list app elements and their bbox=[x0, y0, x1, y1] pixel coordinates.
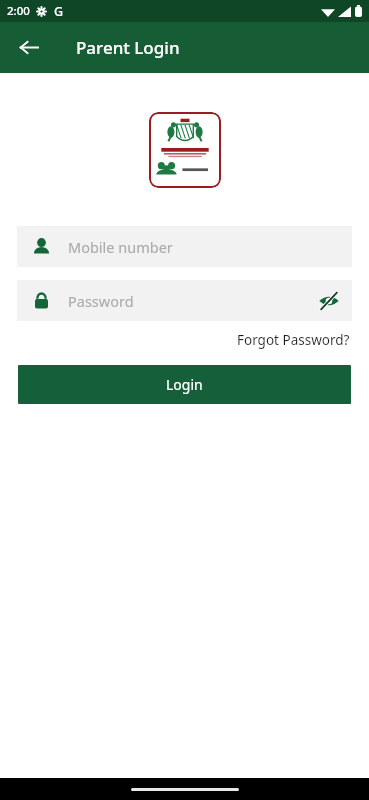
button[interactable]: Login bbox=[18, 365, 351, 404]
button[interactable]: Back bbox=[12, 31, 45, 64]
staticText: Login bbox=[166, 375, 203, 394]
staticText: Forgot Password? bbox=[237, 331, 350, 349]
staticText: Password bbox=[68, 291, 134, 311]
button[interactable]: Toggle password visibility bbox=[310, 282, 348, 320]
button[interactable]: Password bbox=[17, 280, 352, 321]
staticText: Parent Login bbox=[76, 36, 180, 59]
button[interactable]: Mobile number bbox=[17, 226, 352, 267]
staticText: 2:00 bbox=[7, 3, 30, 19]
button[interactable]: Forgot Password? bbox=[235, 327, 352, 353]
staticText: G bbox=[54, 3, 64, 20]
staticText: Mobile number bbox=[68, 237, 173, 257]
